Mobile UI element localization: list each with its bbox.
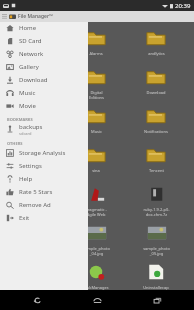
- button[interactable]: Help: [0, 172, 88, 185]
- button[interactable]: TaskManager. apk: [66, 260, 126, 290]
- staticText: Gallery: [19, 63, 39, 71]
- staticText: sample_photo _05.jpg: [143, 246, 170, 256]
- button[interactable]: hmsoft: [6, 26, 66, 65]
- button[interactable]: Gallery: [0, 60, 88, 73]
- staticText: Settings: [19, 162, 42, 170]
- button[interactable]: sample_photo _05.jpg: [126, 221, 186, 260]
- staticText: Music: [91, 129, 102, 134]
- staticText: SD Card: [19, 37, 42, 45]
- staticText: Tencent: [149, 168, 164, 173]
- other: Menu: [2, 14, 7, 19]
- button[interactable]: Ringtones: [6, 143, 66, 182]
- button[interactable]: Home: [76, 290, 118, 310]
- staticText: Alarms: [89, 51, 103, 56]
- button[interactable]: FileManagerH D.apk: [6, 182, 66, 221]
- staticText: 20:39: [175, 2, 191, 10]
- staticText: Rate 5 Stars: [19, 188, 53, 196]
- staticText: Home: [19, 24, 37, 32]
- button[interactable]: Pragmatic - Agile Web: [66, 182, 126, 221]
- staticText: DCIM: [31, 90, 42, 95]
- staticText: sina: [92, 168, 100, 173]
- staticText: TaskManager. apk: [83, 285, 109, 290]
- staticText: BOOKMARKS: [7, 117, 33, 122]
- button[interactable]: Network: [0, 47, 88, 60]
- button[interactable]: Menu: [0, 11, 88, 22]
- staticText: hmsoft: [29, 51, 43, 56]
- button[interactable]: Tencent: [126, 143, 186, 182]
- button[interactable]: Movie: [0, 99, 88, 112]
- staticText: andlytics: [148, 51, 165, 56]
- button[interactable]: Music: [66, 104, 126, 143]
- button[interactable]: Exit: [0, 211, 88, 224]
- staticText: Download: [146, 90, 166, 95]
- button[interactable]: sina: [66, 143, 126, 182]
- staticText: ruby-1.9.2-p0- doc-chm.7z: [143, 207, 170, 217]
- staticText: sdcard: [19, 131, 32, 136]
- button[interactable]: Remove Ad: [0, 198, 88, 211]
- button[interactable]: backups: [0, 122, 88, 136]
- button[interactable]: Music: [0, 86, 88, 99]
- button[interactable]: Download: [126, 65, 186, 104]
- staticText: OTHERS: [7, 141, 23, 146]
- button[interactable]: Digital Editions: [66, 65, 126, 104]
- staticText: backups: [19, 123, 43, 131]
- button[interactable]: Notifications: [126, 104, 186, 143]
- staticText: Pragmatic - Agile Web: [85, 207, 107, 217]
- staticText: Movie: [19, 102, 36, 110]
- staticText: Help: [19, 175, 33, 183]
- button[interactable]: andlytics: [126, 26, 186, 65]
- staticText: Exit: [19, 214, 30, 222]
- button[interactable]: Storage Analysis: [0, 146, 88, 159]
- staticText: File Manager™: [18, 13, 53, 20]
- button[interactable]: mac: [6, 104, 66, 143]
- button[interactable]: Recents: [136, 290, 178, 310]
- staticText: Remove Ad: [19, 201, 51, 209]
- button[interactable]: Uninstaller.ap k: [126, 260, 186, 290]
- staticText: SHORTCUT: [7, 16, 29, 21]
- staticText: sample_photo _04.jpg: [83, 246, 110, 256]
- button[interactable]: SD Card: [0, 34, 88, 47]
- button[interactable]: sample_photo _04.jpg: [66, 221, 126, 260]
- staticText: Download: [19, 76, 48, 84]
- button[interactable]: Alarms: [66, 26, 126, 65]
- staticText: Storage Analysis: [19, 149, 66, 157]
- staticText: Music: [19, 89, 36, 97]
- staticText: Notifications: [144, 129, 168, 134]
- staticText: mac: [32, 129, 40, 134]
- button[interactable]: DCIM: [6, 65, 66, 104]
- staticText: Ringtones: [27, 168, 46, 173]
- button[interactable]: Rate 5 Stars: [0, 185, 88, 198]
- button[interactable]: ruby-1.9.2-p0- doc-chm.7z: [126, 182, 186, 221]
- button[interactable]: Back: [16, 290, 58, 310]
- button[interactable]: Settings: [0, 159, 88, 172]
- button[interactable]: Home: [0, 21, 88, 34]
- staticText: Network: [19, 50, 44, 58]
- staticText: Uninstaller.ap k: [143, 285, 169, 290]
- staticText: Digital Editions: [89, 90, 104, 100]
- button[interactable]: Download: [0, 73, 88, 86]
